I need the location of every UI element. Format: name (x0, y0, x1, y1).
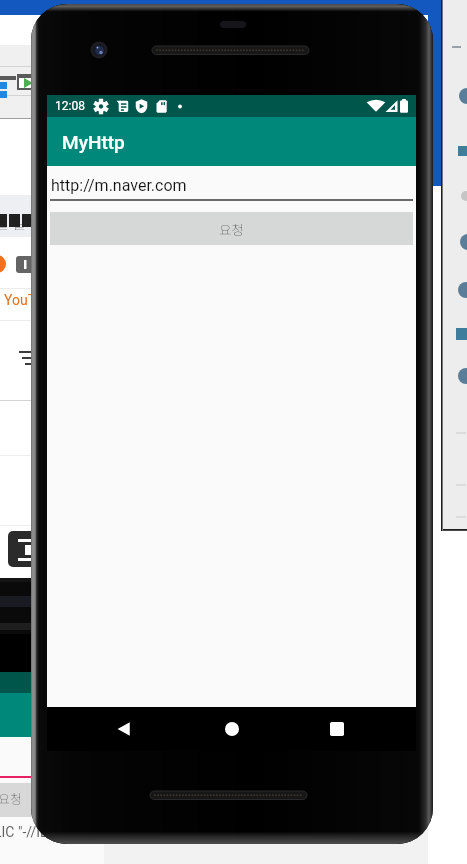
button[interactable]: 요청 (50, 212, 413, 245)
staticText: 요청 (219, 219, 244, 239)
staticText: MyHttp (62, 131, 125, 153)
staticText: http://m.naver.com (51, 176, 187, 195)
staticText: YouT (4, 292, 37, 308)
button[interactable]: http://m.naver.com (47, 166, 416, 201)
staticText: 12:08 (55, 99, 85, 113)
staticText: 요청 (0, 789, 22, 808)
staticText: 밀 일채 (0, 212, 40, 234)
staticText: LIC "-//IE (0, 824, 49, 840)
button[interactable]: Back (102, 707, 146, 751)
button[interactable]: Home (210, 707, 254, 751)
button[interactable]: Recent apps (315, 707, 359, 751)
